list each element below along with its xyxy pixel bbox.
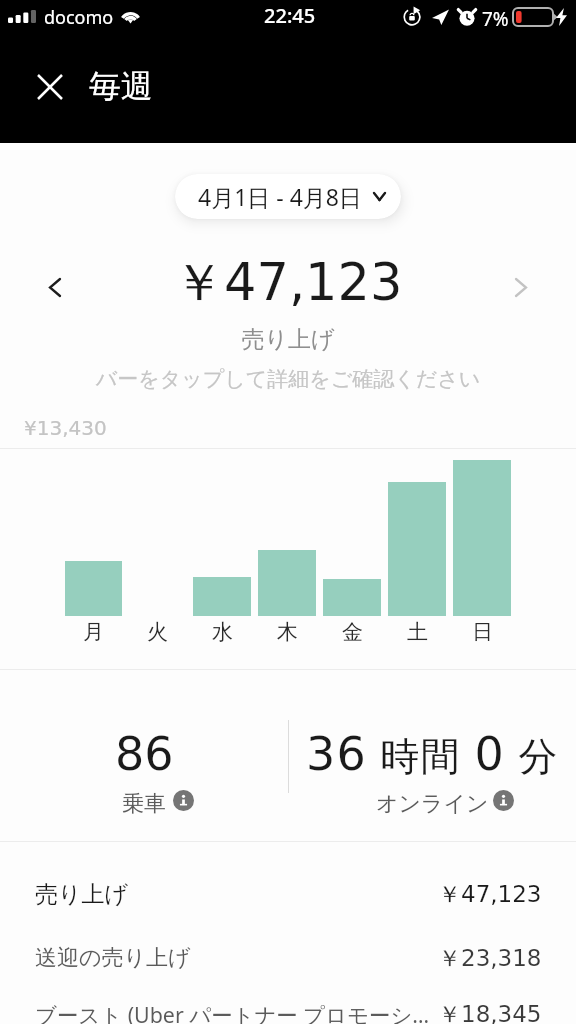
- staticText: 日: [472, 619, 493, 645]
- button[interactable]: ブースト (Uber パートナー プロモーシ…: [0, 990, 576, 1024]
- staticText: ￥47,123: [173, 251, 403, 313]
- button[interactable]: Next week: [500, 266, 542, 308]
- staticText: 22:45: [264, 2, 316, 29]
- staticText: 送迎の売り上げ: [35, 944, 438, 972]
- staticText: ￥18,345: [438, 1000, 542, 1024]
- staticText: 金: [342, 619, 363, 645]
- staticText: ブースト (Uber パートナー プロモーシ…: [35, 1000, 438, 1024]
- staticText: 売り上げ: [0, 325, 576, 354]
- staticText: 86: [115, 727, 174, 781]
- staticText: docomo: [44, 5, 114, 30]
- staticText: 土: [407, 619, 428, 645]
- button[interactable]: Close: [24, 61, 76, 113]
- staticText: 4月1日 - 4月8日: [198, 181, 362, 212]
- staticText: 水: [212, 619, 233, 645]
- button[interactable]: Info: [493, 790, 514, 811]
- staticText: 売り上げ: [35, 880, 438, 909]
- staticText: オンライン: [376, 790, 489, 818]
- staticText: ¥13,430: [24, 416, 107, 439]
- staticText: 火: [147, 619, 168, 645]
- button[interactable]: Previous week: [34, 266, 76, 308]
- staticText: 毎週: [89, 66, 153, 106]
- button[interactable]: 36 時間 0 分: [288, 670, 576, 841]
- staticText: バーをタップして詳細をご確認ください: [0, 366, 576, 392]
- staticText: ￥47,123: [438, 880, 542, 909]
- staticText: 月: [83, 619, 104, 645]
- staticText: 36 時間 0 分: [306, 727, 559, 781]
- button[interactable]: 売り上げ: [0, 862, 576, 926]
- button[interactable]: 送迎の売り上げ: [0, 926, 576, 990]
- staticText: 木: [277, 619, 298, 645]
- button[interactable]: 86: [0, 670, 288, 841]
- staticText: 乗車: [122, 790, 166, 818]
- button[interactable]: 4月1日 - 4月8日: [175, 174, 401, 219]
- button[interactable]: Info: [173, 790, 194, 811]
- staticText: 7%: [482, 6, 509, 32]
- staticText: ￥23,318: [438, 944, 542, 973]
